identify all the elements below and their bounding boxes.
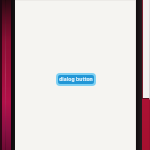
staticText: dialog button — [59, 76, 93, 83]
button[interactable]: dialog button — [56, 73, 96, 86]
